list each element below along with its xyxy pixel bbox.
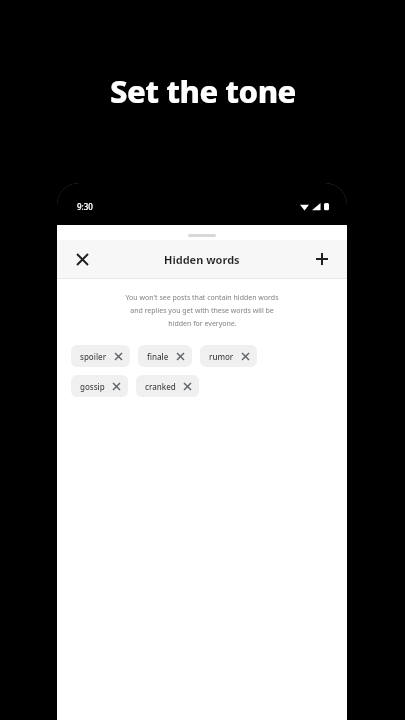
staticText: rumor <box>209 351 234 362</box>
button[interactable]: cranked <box>136 375 199 397</box>
staticText: You won't see posts that contain hidden … <box>125 293 279 303</box>
button[interactable]: rumor <box>200 345 257 367</box>
button[interactable]: finale <box>138 345 192 367</box>
staticText: gossip <box>80 381 105 392</box>
button[interactable]: Close <box>67 244 97 274</box>
staticText: Set the tone <box>110 70 296 112</box>
staticText: 9:30 <box>77 201 93 212</box>
staticText: Hidden words <box>164 252 240 267</box>
staticText: spoiler <box>80 351 107 362</box>
button[interactable]: gossip <box>71 375 128 397</box>
button[interactable]: spoiler <box>71 345 130 367</box>
staticText: and replies you get with these words wil… <box>130 306 274 316</box>
button[interactable]: Add word <box>307 244 337 274</box>
staticText: hidden for everyone. <box>168 319 237 329</box>
staticText: cranked <box>145 381 176 392</box>
staticText: finale <box>147 351 169 362</box>
